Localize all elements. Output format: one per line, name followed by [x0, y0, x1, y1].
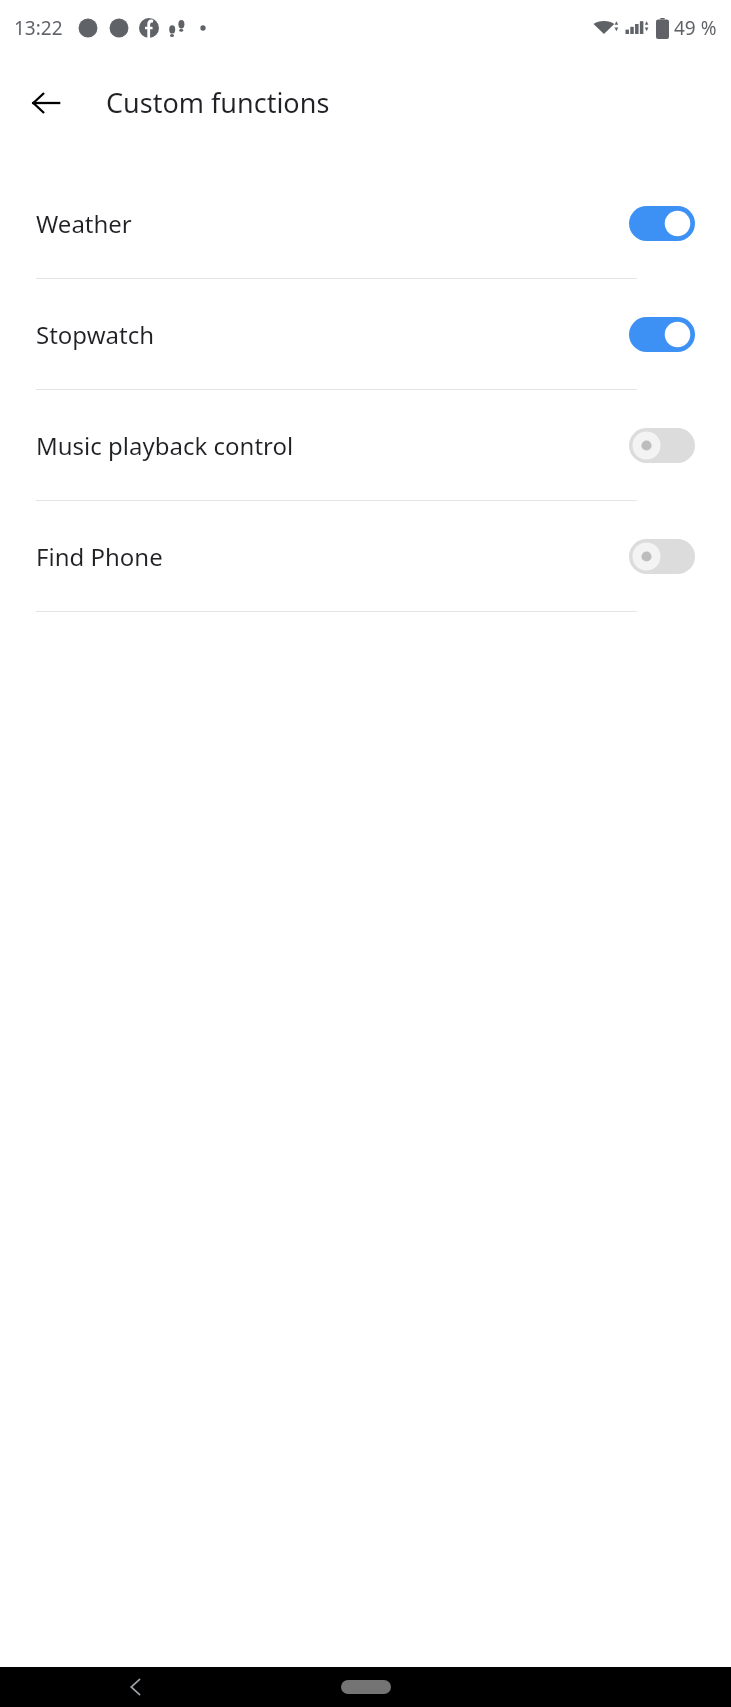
button[interactable]: Back [108, 1667, 164, 1707]
button[interactable]: Find Phone toggle [629, 539, 695, 574]
button[interactable]: Stopwatch toggle [629, 317, 695, 352]
button[interactable]: Music playback control toggle [629, 428, 695, 463]
button[interactable]: Music playback control [0, 390, 731, 500]
staticText: Custom functions [106, 84, 330, 121]
button[interactable]: Home [326, 1669, 406, 1705]
button[interactable]: Weather [0, 168, 731, 278]
staticText: Stopwatch [36, 318, 629, 351]
staticText: Find Phone [36, 540, 629, 573]
staticText: 49 % [674, 15, 717, 41]
staticText: Music playback control [36, 429, 629, 462]
staticText: 13:22 [14, 15, 63, 41]
button[interactable]: Stopwatch [0, 279, 731, 389]
button[interactable]: Back [22, 79, 70, 127]
staticText: Weather [36, 207, 629, 240]
button[interactable]: Find Phone [0, 501, 731, 611]
button[interactable]: Weather toggle [629, 206, 695, 241]
